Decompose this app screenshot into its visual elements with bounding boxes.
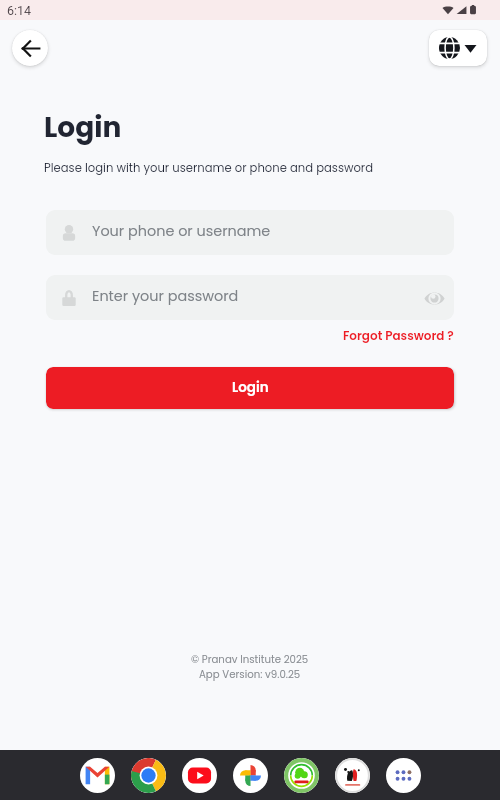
staticText: Your phone or username: [92, 221, 271, 241]
staticText: Login: [44, 108, 122, 147]
button[interactable]: All apps: [386, 758, 421, 793]
staticText: © Pranav Institute 2025: [191, 652, 309, 666]
button[interactable]: Change language: [429, 30, 487, 66]
button[interactable]: Gmail: [80, 758, 115, 793]
staticText: App Version: v9.0.25: [199, 667, 301, 681]
button[interactable]: Chrome: [131, 758, 166, 793]
button[interactable]: Your phone or username: [46, 210, 454, 255]
staticText: Please login with your username or phone…: [44, 160, 374, 176]
button[interactable]: App: [335, 758, 370, 793]
button[interactable]: Forgot Password ?: [343, 327, 454, 344]
button[interactable]: YouTube: [182, 758, 217, 793]
button[interactable]: Back: [12, 30, 48, 66]
staticText: Enter your password: [92, 286, 239, 306]
staticText: Login: [232, 378, 269, 397]
button[interactable]: Login: [46, 367, 454, 409]
staticText: 6:14: [7, 3, 32, 18]
button[interactable]: Show password: [423, 287, 445, 309]
button[interactable]: Enter your password: [46, 275, 454, 320]
button[interactable]: App: [284, 758, 319, 793]
button[interactable]: Photos: [233, 758, 268, 793]
